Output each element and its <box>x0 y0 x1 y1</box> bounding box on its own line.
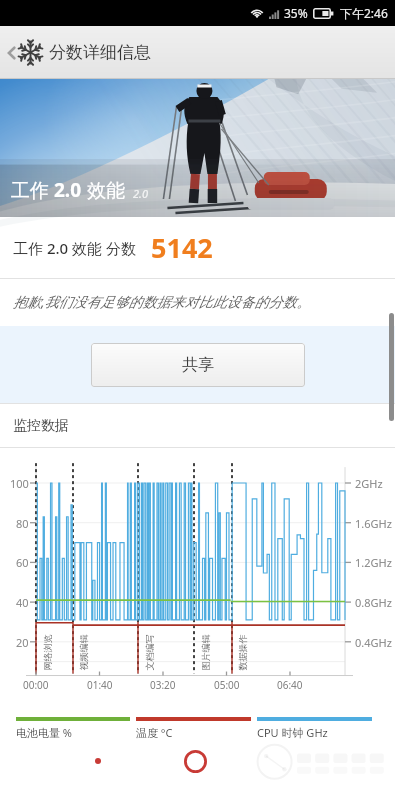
staticText: 2GHz <box>355 476 383 491</box>
staticText: CPU 时钟 GHz <box>257 725 328 740</box>
staticText: 图片编辑 2.0 <box>198 624 210 670</box>
staticText: 2.0 <box>54 177 82 203</box>
staticText: 1.6GHz <box>355 516 392 531</box>
staticText: 100 <box>10 476 29 491</box>
staticText: 05:00 <box>214 678 240 692</box>
staticText: 06:40 <box>277 678 303 692</box>
staticText: 工作 2.0 效能 分数 <box>13 238 136 258</box>
staticText: 00:00 <box>23 678 49 692</box>
staticText: 5142 <box>151 229 213 266</box>
staticText: 0.8GHz <box>355 595 392 610</box>
staticText: 电池电量 % <box>16 725 73 740</box>
staticText: 01:40 <box>87 678 113 692</box>
button[interactable]: Back <box>5 41 151 64</box>
staticText: 2.0 <box>133 186 148 201</box>
staticText: 监控数据 <box>13 417 69 435</box>
staticText: 抱歉,我们没有足够的数据来对比此设备的分数。 <box>13 292 311 311</box>
staticText: 分数详细信息 <box>49 42 151 63</box>
staticText: 数据操作 <box>236 634 247 670</box>
staticText: 35% <box>284 5 308 21</box>
staticText: 共享 <box>182 355 214 375</box>
staticText: 网络浏览 2.0 <box>40 624 52 670</box>
staticText: 0.4GHz <box>355 635 392 650</box>
staticText: 视频编辑 <box>77 634 88 670</box>
staticText: 工作 <box>11 177 54 203</box>
staticText: 80 <box>16 516 29 531</box>
staticText: 1.2GHz <box>355 555 392 570</box>
button[interactable]: Back <box>76 742 120 780</box>
staticText: 下午2:46 <box>340 5 388 21</box>
button[interactable]: Home <box>173 742 217 780</box>
staticText: 03:20 <box>150 678 176 692</box>
staticText: 40 <box>16 595 29 610</box>
staticText: 60 <box>16 555 29 570</box>
staticText: 文档编写 2.0 <box>142 624 154 670</box>
staticText: 温度 °C <box>136 725 173 740</box>
staticText: 20 <box>16 635 29 650</box>
staticText: 效能 <box>82 177 125 203</box>
button[interactable]: 共享 <box>91 343 305 387</box>
